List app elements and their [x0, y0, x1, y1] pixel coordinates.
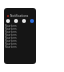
- button[interactable]: Row item: [4, 30, 36, 33]
- staticText: Row item: [5, 33, 17, 36]
- staticText: Row item: [5, 42, 17, 45]
- button[interactable]: Filter 2: [14, 19, 18, 23]
- staticText: Row item: [5, 30, 17, 33]
- staticText: Row item: [5, 36, 17, 39]
- staticText: Row item: [5, 39, 17, 42]
- staticText: Row item: [5, 45, 17, 48]
- button[interactable]: App icon: [7, 14, 29, 18]
- button[interactable]: Row item: [4, 27, 36, 30]
- staticText: Row item: [5, 24, 17, 27]
- staticText: Row item: [5, 27, 17, 30]
- button[interactable]: Row item: [4, 36, 36, 39]
- button[interactable]: Filter 4: [30, 19, 34, 23]
- button[interactable]: Row item: [4, 39, 36, 42]
- other: App icon: [7, 15, 9, 17]
- button[interactable]: Filter 3: [22, 19, 26, 23]
- button[interactable]: Row item: [4, 45, 36, 48]
- button[interactable]: Row item: [4, 24, 36, 27]
- button[interactable]: Row item: [4, 42, 36, 45]
- button[interactable]: Row item: [4, 33, 36, 36]
- button[interactable]: Filter 1: [6, 19, 10, 23]
- staticText: Notifications: [10, 14, 29, 18]
